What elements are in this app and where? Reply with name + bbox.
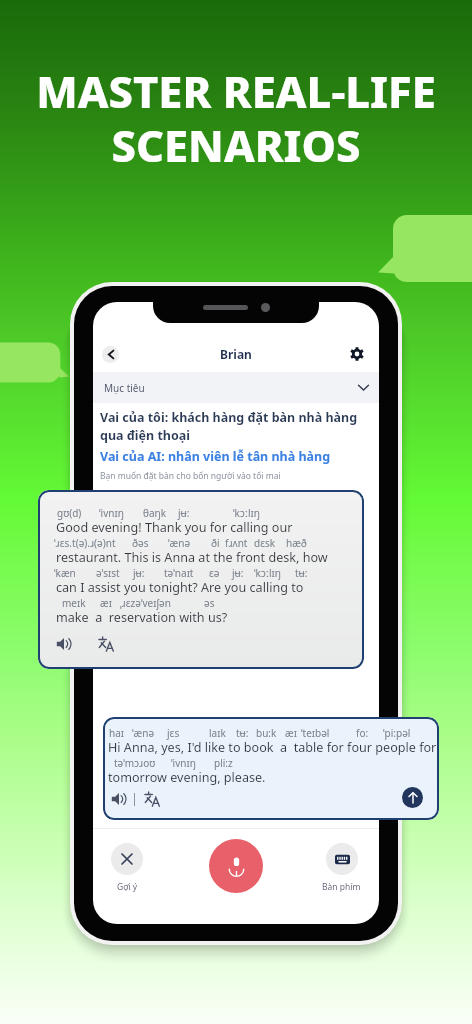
button[interactable]: Settings [346,343,368,365]
staticText: Mục tiêu [104,381,145,395]
staticText: laɪk [209,726,226,740]
button[interactable]: Play audio [54,634,74,654]
staticText: jɛs [167,726,180,740]
staticText: təˈmɔɹoʊ [114,756,156,770]
staticText: ˈkɔːlɪŋ [233,506,260,520]
staticText: Bạn muốn đặt bàn cho bốn người vào tối m… [100,470,281,482]
staticText: əˈsɪst [96,566,120,580]
staticText: tomorrow evening, please. [108,769,266,786]
staticText: gʊ(d) [57,506,82,520]
staticText: jʉ: [232,566,244,580]
button[interactable]: Gợi ý [111,843,143,893]
staticText: fɹʌnt [225,536,248,550]
staticText: ˈkæn [54,566,76,580]
staticText: ˈteɪbəl [301,726,330,740]
staticText: θaŋk [143,506,167,520]
staticText: ˈivnɪŋ [99,506,124,520]
button[interactable]: Send [402,787,423,808]
staticText: make a reservation with us? [56,609,228,626]
staticText: hæð [286,536,307,550]
staticText: æɪ [100,596,112,610]
button[interactable]: Back [102,346,119,363]
staticText: dɛsk [254,536,276,550]
staticText: ˈivnɪŋ [171,756,196,770]
staticText: fo: [356,726,369,740]
staticText: Brian [220,346,252,362]
staticText: ˌɹɛzəˈveɪʃən [120,596,171,610]
staticText: MASTER REAL-LIFE [36,61,436,120]
staticText: Gợi ý [117,881,138,893]
staticText: Vai của AI: nhân viên lễ tân nhà hàng [100,448,331,465]
button[interactable]: Bàn phím [322,843,361,893]
staticText: meɪk [62,596,86,610]
staticText: Bàn phím [322,881,361,893]
staticText: can I assist you tonight? Are you callin… [56,579,304,596]
staticText: æɪ [285,726,297,740]
staticText: ˈænə [168,536,191,550]
staticText: ɛə [209,566,220,580]
button[interactable]: Mục tiêu [93,372,379,403]
staticText: ðəs [132,536,149,550]
staticText: ˈænə [132,726,155,740]
button[interactable]: gʊ(d) [38,490,364,669]
staticText: tʉ: [295,566,308,580]
button[interactable]: Play audio [109,789,129,809]
staticText: Hi Anna, yes, I'd like to book a table f… [108,739,437,756]
button[interactable]: Record [209,839,263,893]
staticText: jʉ: [133,566,145,580]
button[interactable]: haɪ [103,717,439,820]
staticText: pli:z [214,756,233,770]
staticText: təˈnaɪt [164,566,194,580]
staticText: Good evening! Thank you for calling our [56,519,293,536]
staticText: ði [211,536,220,550]
staticText: əs [204,596,215,610]
staticText: tʉ: [236,726,249,740]
staticText: SCENARIOS [111,115,361,174]
staticText: jʉ: [178,506,190,520]
button[interactable]: Translate [96,634,116,654]
staticText: haɪ [109,726,124,740]
button[interactable]: Translate [142,789,162,809]
staticText: ˈɹɛs.t(ə).ɹ(ə)nt [54,536,116,550]
staticText: ˈkɔːlɪŋ [254,566,281,580]
staticText: bu:k [256,726,277,740]
staticText: ˈpi:pəl [383,726,411,740]
staticText: restaurant. This is Anna at the front de… [56,549,328,566]
staticText: Vai của tôi: khách hàng đặt bàn nhà hàng… [100,409,358,444]
